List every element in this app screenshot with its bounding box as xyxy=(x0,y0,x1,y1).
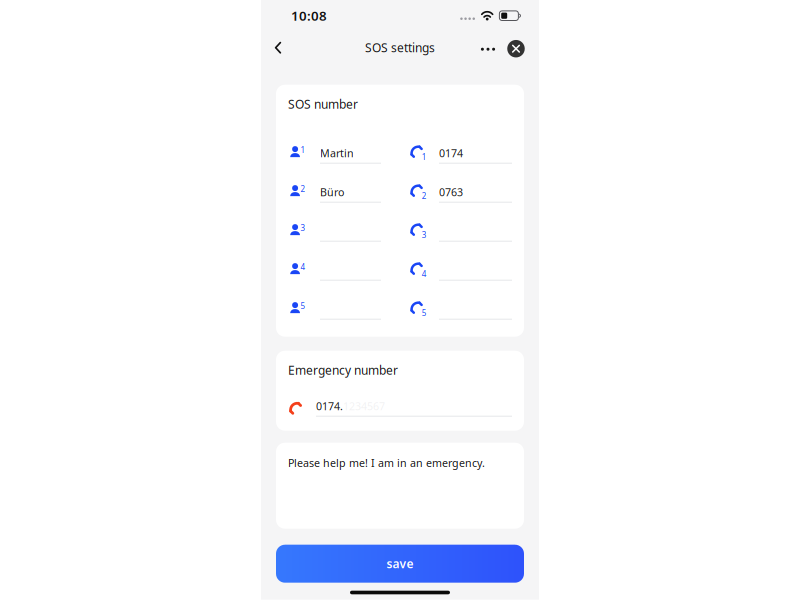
staticText: 1 xyxy=(301,144,306,155)
staticText: 10:08 xyxy=(291,7,327,24)
staticText: Please help me! I am in an emergency. xyxy=(288,456,485,470)
staticText: 4 xyxy=(301,261,306,272)
staticText: save xyxy=(386,556,413,572)
staticText: 1 xyxy=(422,152,427,162)
button[interactable]: Back xyxy=(261,32,295,64)
button[interactable]: save xyxy=(276,545,524,583)
staticText: 1234567 xyxy=(343,399,385,413)
staticText: SOS number xyxy=(288,96,358,112)
staticText: Martin xyxy=(320,146,354,160)
staticText: SOS settings xyxy=(365,40,435,56)
staticText: 0174. xyxy=(316,399,343,413)
staticText: 5 xyxy=(422,308,427,318)
staticText: 0763 xyxy=(439,185,463,199)
staticText: 5 xyxy=(301,300,306,311)
staticText: 3 xyxy=(422,230,427,240)
button[interactable]: More options xyxy=(473,32,503,64)
staticText: Emergency number xyxy=(288,362,398,378)
staticText: 2 xyxy=(301,183,306,194)
staticText: 4 xyxy=(422,269,427,279)
staticText: 0174 xyxy=(439,146,463,160)
button[interactable]: Close xyxy=(503,32,529,64)
staticText: Büro xyxy=(320,185,344,199)
staticText: 2 xyxy=(422,191,427,201)
staticText: 3 xyxy=(301,222,306,233)
